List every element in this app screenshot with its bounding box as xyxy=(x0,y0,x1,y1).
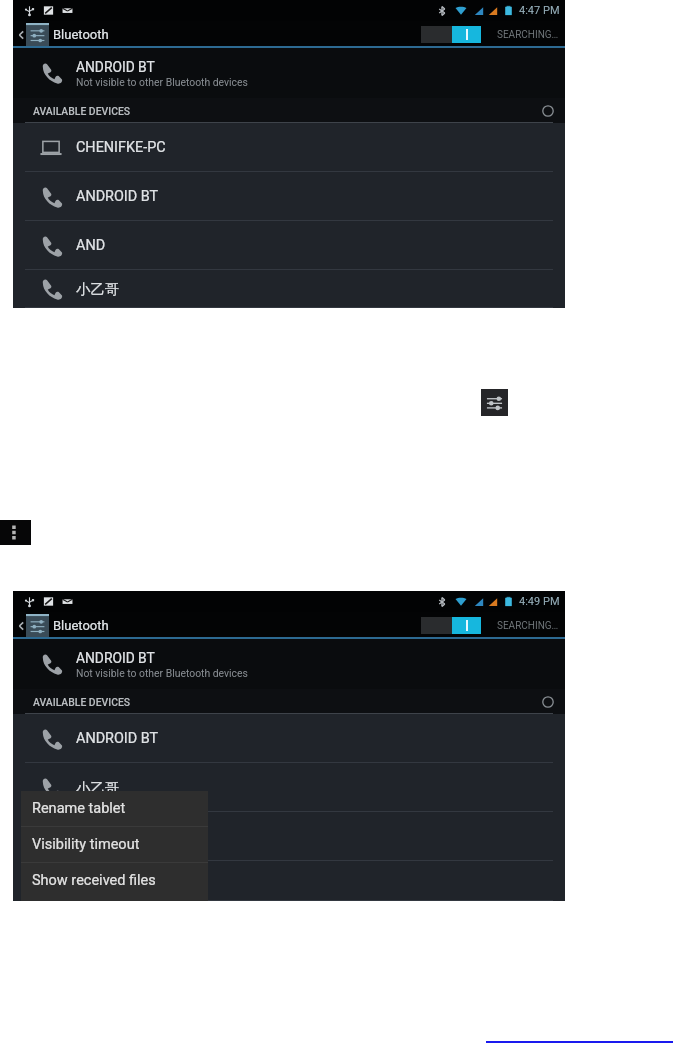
button[interactable]: Navigate up xyxy=(13,614,109,637)
button[interactable]: AND xyxy=(13,221,565,270)
staticText: 4:47 PM xyxy=(519,4,560,17)
button[interactable]: 小乙哥 xyxy=(13,763,565,812)
staticText: Bluetooth xyxy=(53,618,109,633)
button[interactable]: ANDROID BT xyxy=(13,639,565,689)
staticText: Show received files xyxy=(32,872,156,889)
staticText: AVAILABLE DEVICES xyxy=(33,105,131,117)
staticText: ANDROID BT xyxy=(76,650,155,666)
button[interactable]: Bluetooth on xyxy=(421,617,481,634)
staticText: Rename tablet xyxy=(32,800,126,817)
button[interactable]: Navigate up xyxy=(13,23,109,46)
button[interactable]: Rename tablet xyxy=(21,791,208,826)
button[interactable]: ANDROID BT xyxy=(13,48,565,98)
staticText: 小乙哥 xyxy=(76,280,120,298)
button[interactable]: Visibility timeout xyxy=(21,827,208,862)
button[interactable]: ANDROID BT xyxy=(13,714,565,763)
button[interactable]: Bluetooth device xyxy=(13,861,565,901)
staticText: SEARCHING… xyxy=(497,620,559,632)
button[interactable]: CHENIFKE-PC xyxy=(13,123,565,172)
staticText: ANDROID BT xyxy=(76,730,159,747)
button[interactable]: Show received files xyxy=(21,863,208,898)
staticText: 4:49 PM xyxy=(519,595,560,608)
staticText: CHENIFKE-PC xyxy=(76,139,166,156)
button[interactable]: ANDROID BT xyxy=(13,172,565,221)
button[interactable]: More options xyxy=(0,520,31,545)
staticText: Not visible to other Bluetooth devices xyxy=(76,76,248,88)
button[interactable]: 小乙哥 xyxy=(13,270,565,308)
staticText: Not visible to other Bluetooth devices xyxy=(76,667,248,679)
button[interactable]: Bluetooth settings xyxy=(481,389,508,416)
staticText: SEARCHING… xyxy=(497,29,559,41)
staticText: AND xyxy=(76,237,106,254)
staticText: Bluetooth xyxy=(53,27,109,42)
staticText: Visibility timeout xyxy=(32,836,140,853)
staticText: AVAILABLE DEVICES xyxy=(33,696,131,708)
staticText: 小乙哥 xyxy=(76,779,120,797)
staticText: ANDROID BT xyxy=(76,188,159,205)
button[interactable]: Bluetooth device xyxy=(13,812,565,861)
staticText: ANDROID BT xyxy=(76,59,155,75)
button[interactable]: Bluetooth on xyxy=(421,26,481,43)
